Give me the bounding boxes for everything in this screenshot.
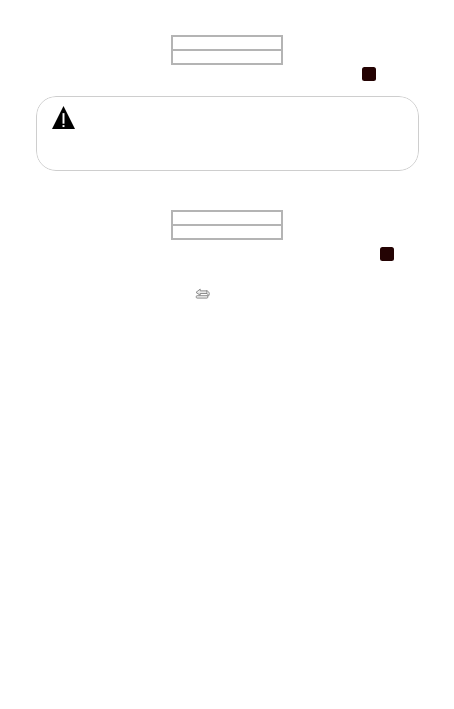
button[interactable]: Table placeholder bbox=[171, 35, 283, 65]
button[interactable]: Colour swatch bbox=[362, 67, 376, 81]
button[interactable]: Colour swatch bbox=[380, 247, 394, 261]
button[interactable]: Return bbox=[196, 288, 210, 299]
button[interactable]: Warning card bbox=[36, 96, 419, 171]
button[interactable]: Table placeholder bbox=[171, 210, 283, 240]
